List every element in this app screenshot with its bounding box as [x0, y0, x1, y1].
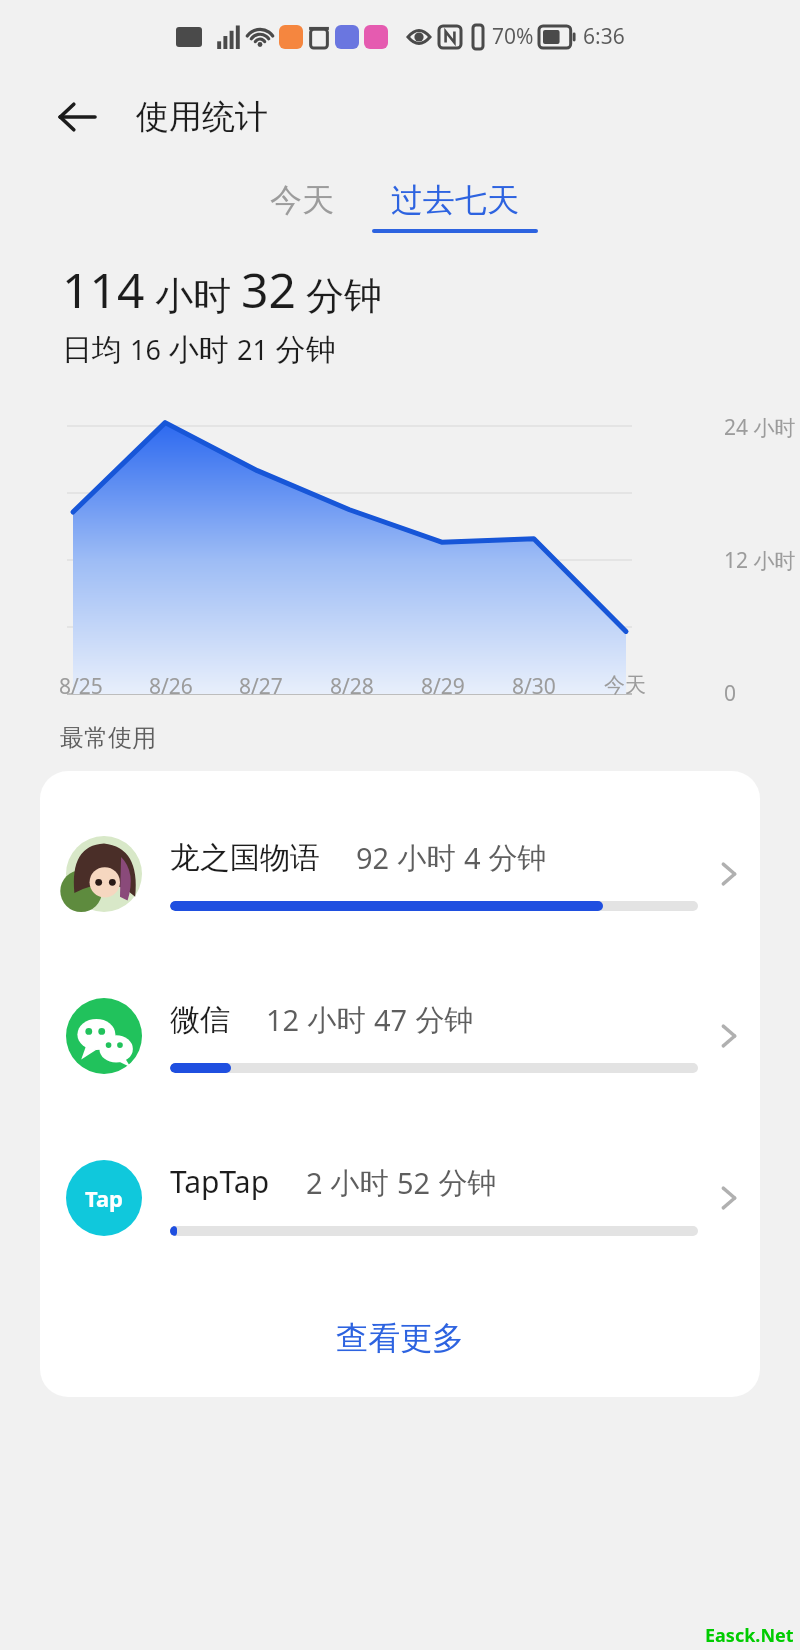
staticText: Easck.Net [705, 1623, 794, 1648]
staticText: 6:36 [583, 22, 625, 51]
button[interactable]: Tap [40, 1117, 760, 1279]
staticText: 龙之国物语 [170, 839, 320, 877]
staticText: 小时 [323, 1162, 397, 1202]
staticText: 最常使用 [60, 723, 156, 753]
staticText: 使用统计 [136, 96, 268, 138]
staticText: 小时 [300, 999, 374, 1039]
staticText: 今天 [604, 672, 646, 698]
staticText: 8/27 [239, 672, 283, 701]
staticText: 8/29 [421, 672, 465, 701]
staticText: 分钟 [296, 268, 382, 320]
button[interactable]: 过去七天 [366, 174, 544, 239]
staticText: 52 [397, 1163, 431, 1202]
staticText: 70% [492, 22, 534, 51]
button[interactable]: 龙之国物语 [40, 793, 760, 955]
staticText: 日均 [62, 328, 130, 369]
staticText: 小时 [390, 837, 464, 877]
button[interactable]: 今天 [256, 174, 348, 226]
staticText: 0 [724, 679, 737, 701]
staticText: 分钟 [481, 837, 547, 877]
staticText: 16 [130, 331, 161, 368]
button[interactable]: 微信 [40, 955, 760, 1117]
staticText: 分钟 [268, 328, 336, 369]
staticText: 8/28 [330, 672, 374, 701]
staticText: 114 [62, 257, 145, 322]
staticText: 查看更多 [336, 1318, 464, 1358]
staticText: 4 [464, 838, 481, 877]
button[interactable]: 查看更多 [40, 1279, 760, 1397]
staticText: 12 小时 [724, 546, 796, 575]
staticText: 分钟 [408, 999, 474, 1039]
staticText: 小时 [145, 268, 241, 320]
staticText: 分钟 [431, 1162, 497, 1202]
staticText: 12 [266, 1000, 300, 1039]
staticText: TapTap [170, 1161, 270, 1202]
button[interactable]: Back [46, 86, 108, 148]
staticText: 今天 [270, 180, 334, 220]
staticText: Tap [85, 1183, 124, 1213]
staticText: 32 [241, 257, 296, 322]
staticText: 微信 [170, 1001, 230, 1039]
staticText: 8/30 [512, 672, 556, 701]
staticText: 8/25 [59, 672, 103, 701]
staticText: 47 [374, 1000, 408, 1039]
staticText: 24 小时 [724, 413, 796, 442]
staticText: 2 [306, 1163, 323, 1202]
staticText: 8/26 [149, 672, 193, 701]
staticText: 小时 [161, 328, 237, 369]
staticText: 92 [356, 838, 390, 877]
staticText: 过去七天 [391, 180, 519, 220]
staticText: 21 [237, 331, 268, 368]
